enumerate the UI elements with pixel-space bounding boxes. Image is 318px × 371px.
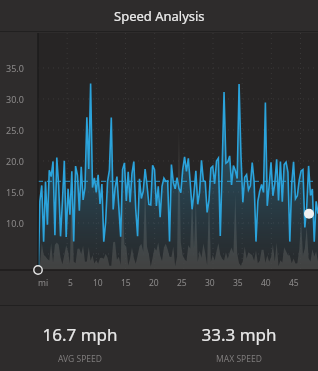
- staticText: mi: [38, 277, 49, 289]
- staticText: 10: [93, 277, 103, 289]
- staticText: 16.7 mph: [42, 323, 118, 346]
- staticText: 25: [177, 277, 187, 289]
- staticText: 45: [289, 277, 299, 289]
- staticText: 15.0: [6, 186, 24, 198]
- staticText: 5: [68, 277, 73, 289]
- staticText: 10.0: [6, 217, 24, 229]
- staticText: 33.3 mph: [201, 323, 277, 346]
- staticText: 35.0: [6, 62, 24, 74]
- staticText: 35: [233, 277, 243, 289]
- staticText: 40: [261, 277, 271, 289]
- staticText: 30: [205, 277, 215, 289]
- staticText: 20: [149, 277, 159, 289]
- button[interactable]: 16.7 mph: [0, 306, 159, 371]
- staticText: 25.0: [6, 124, 24, 136]
- staticText: Speed Analysis: [114, 7, 205, 25]
- staticText: 20.0: [6, 155, 24, 167]
- button[interactable]: Speed chart: [0, 32, 318, 305]
- button[interactable]: 33.3 mph: [159, 306, 318, 371]
- staticText: 15: [121, 277, 131, 289]
- staticText: 30.0: [6, 93, 24, 105]
- staticText: MAX SPEED: [216, 353, 262, 365]
- staticText: AVG SPEED: [58, 353, 102, 365]
